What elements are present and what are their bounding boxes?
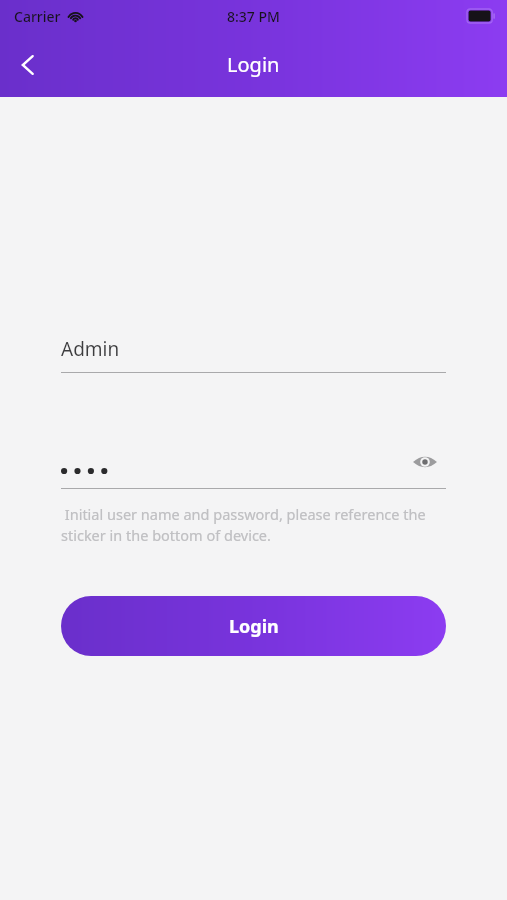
button[interactable]: Admin — [61, 327, 446, 373]
staticText: Login — [229, 614, 279, 639]
button[interactable]: Back — [4, 41, 52, 89]
button[interactable]: Login — [61, 596, 446, 656]
staticText: Admin — [61, 336, 120, 362]
button[interactable]: Show password — [404, 441, 446, 483]
button[interactable] — [61, 465, 119, 477]
staticText: Carrier — [14, 7, 61, 26]
staticText: Initial user name and password, please r… — [61, 504, 446, 546]
staticText: 8:37 PM — [227, 7, 280, 26]
staticText: Login — [227, 51, 280, 78]
